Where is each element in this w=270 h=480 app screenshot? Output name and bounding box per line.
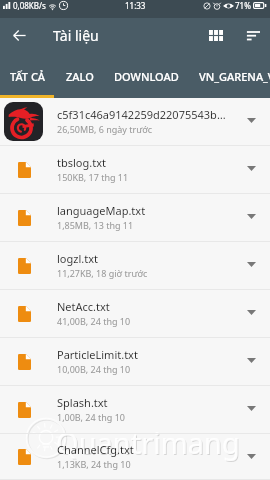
button[interactable]: More options [232, 385, 270, 432]
staticText: ParticleLimit.txt [57, 347, 138, 362]
button[interactable]: Grid view [197, 17, 235, 53]
staticText: ChannelCfg.txt [57, 442, 134, 457]
staticText: 26,50MB, 6 ngày trước [57, 123, 153, 135]
button[interactable]: NetAcc.txt [0, 289, 270, 336]
staticText: ZALO [66, 69, 94, 84]
button[interactable]: More options [232, 433, 270, 479]
button[interactable]: More options [232, 289, 270, 336]
button[interactable]: tbslog.txt [0, 145, 270, 192]
button[interactable]: More options [232, 337, 270, 384]
staticText: VN_GARENA_VN [199, 69, 270, 84]
button[interactable]: More options [232, 193, 270, 240]
staticText: NetAcc.txt [57, 299, 110, 314]
staticText: 1,13KB, 24 thg 10 [57, 458, 131, 470]
button[interactable]: Sort [235, 18, 270, 53]
button[interactable]: Splash.txt [0, 385, 270, 432]
staticText: 0,08KB/s [13, 0, 46, 11]
staticText: 41,00B, 24 thg 10 [57, 315, 131, 327]
staticText: tbslog.txt [57, 155, 106, 170]
button[interactable]: ZALO [56, 55, 104, 98]
button[interactable]: languageMap.txt [0, 193, 270, 240]
button[interactable]: ParticleLimit.txt [0, 337, 270, 384]
staticText: 71% [235, 0, 251, 11]
staticText: DOWNLOAD [114, 69, 179, 84]
button[interactable]: Back [0, 17, 38, 53]
staticText: TẤT CẢ [10, 69, 46, 84]
staticText: c5f31c46a9142259d22075543bd... [57, 107, 232, 122]
button[interactable]: c5f31c46a9142259d22075543bd... [0, 97, 270, 144]
button[interactable]: More options [232, 145, 270, 192]
staticText: 11,27KB, 18 giờ trước [57, 267, 148, 279]
button[interactable]: DOWNLOAD [104, 55, 189, 98]
staticText: 1,00B, 24 thg 10 [57, 411, 125, 423]
staticText: Splash.txt [57, 395, 108, 410]
button[interactable]: ChannelCfg.txt [0, 433, 270, 479]
button[interactable]: More options [232, 97, 270, 144]
staticText: logzl.txt [57, 251, 98, 266]
button[interactable]: More options [232, 241, 270, 288]
staticText: 150KB, 17 thg 11 [57, 171, 129, 183]
staticText: languageMap.txt [57, 203, 146, 218]
staticText: Quantrimang [56, 423, 240, 462]
button[interactable]: TẤT CẢ [0, 55, 56, 98]
staticText: Quantrimang [57, 424, 241, 463]
button[interactable]: logzl.txt [0, 241, 270, 288]
staticText: Tài liệu [53, 26, 99, 45]
staticText: 10,00B, 24 thg 10 [57, 363, 131, 375]
button[interactable]: VN_GARENA_VN [189, 55, 270, 98]
staticText: 1,85MB, 13 thg 11 [57, 219, 134, 231]
staticText: 11:33 [125, 0, 146, 11]
